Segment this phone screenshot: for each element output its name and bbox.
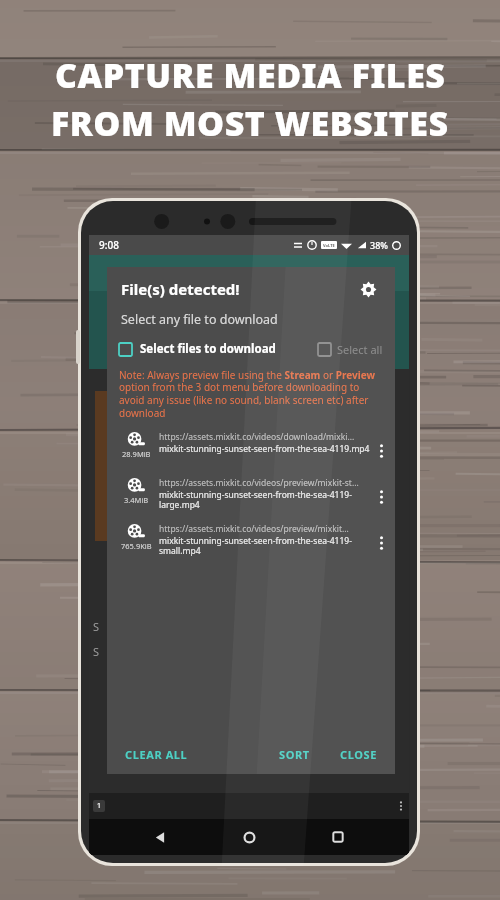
button[interactable]: CLOSE <box>332 741 385 768</box>
staticText: mixkit-stunning-sunset-seen-from-the-sea… <box>159 535 371 556</box>
staticText: Note: Always preview file using the Stre… <box>119 368 383 420</box>
staticText: mixkit-stunning-sunset-seen-from-the-sea… <box>159 489 371 510</box>
staticText: SORT <box>279 747 310 762</box>
button[interactable]: Back <box>142 819 178 855</box>
button[interactable]: SORT <box>271 741 318 768</box>
button[interactable]: More options <box>371 474 391 520</box>
button[interactable]: Select all <box>318 336 383 362</box>
staticText: 1 <box>97 801 102 811</box>
button[interactable]: More options <box>371 520 391 566</box>
staticText: S <box>93 619 100 634</box>
staticText: Select files to download <box>140 341 276 357</box>
button[interactable]: 3.4MiB <box>107 474 395 520</box>
button[interactable]: Recent apps <box>320 819 356 855</box>
staticText: FROM MOST WEBSITES <box>51 100 449 146</box>
button[interactable]: Settings <box>355 276 381 302</box>
staticText: 3.4MiB <box>124 495 149 505</box>
staticText: mixkit-stunning-sunset-seen-from-the-sea… <box>159 443 370 455</box>
staticText: https://assets.mixkit.co/videos/download… <box>159 431 355 443</box>
staticText: CAPTURE MEDIA FILES <box>55 52 446 98</box>
staticText: https://assets.mixkit.co/videos/preview/… <box>159 523 349 535</box>
staticText: 38% <box>370 239 388 251</box>
button[interactable]: CLEAR ALL <box>117 741 196 768</box>
button[interactable]: Home <box>231 819 267 855</box>
staticText: 9:08 <box>99 238 119 252</box>
button[interactable]: More options <box>371 428 391 474</box>
staticText: VoLTE <box>323 243 335 248</box>
staticText: https://assets.mixkit.co/videos/preview/… <box>159 477 359 489</box>
button[interactable]: 28.9MiB <box>107 428 395 474</box>
button[interactable]: 765.9KiB <box>107 520 395 566</box>
staticText: 28.9MiB <box>122 449 151 459</box>
button[interactable]: Select files to download <box>119 336 318 362</box>
staticText: Select all <box>337 342 383 357</box>
staticText: CLEAR ALL <box>125 747 188 762</box>
staticText: CLOSE <box>340 747 377 762</box>
staticText: File(s) detected! <box>121 279 355 299</box>
staticText: 765.9KiB <box>121 541 152 551</box>
staticText: Select any file to download <box>121 311 278 328</box>
staticText: S <box>93 644 100 659</box>
